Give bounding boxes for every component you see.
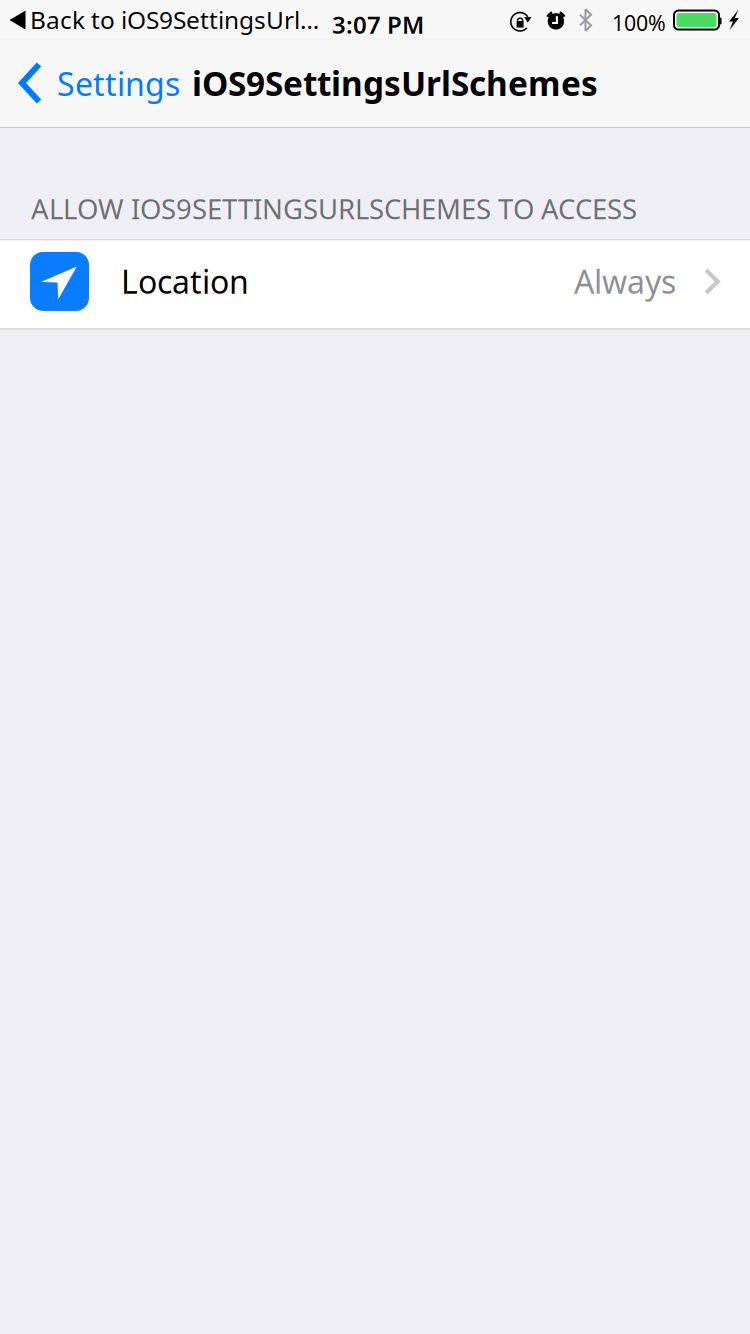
- staticText: 3:07 PM: [332, 9, 424, 40]
- button[interactable]: Location: [0, 240, 750, 328]
- staticText: Settings: [57, 62, 180, 105]
- staticText: Location: [121, 260, 249, 303]
- staticText: iOS9SettingsUrlSchemes: [192, 61, 598, 105]
- staticText: 100%: [612, 9, 666, 37]
- staticText: ALLOW IOS9SETTINGSURLSCHEMES TO ACCESS: [31, 190, 637, 227]
- staticText: Back to iOS9SettingsUrl…: [30, 3, 319, 36]
- button[interactable]: Back to iOS9SettingsUrlSchemes: [0, 0, 319, 40]
- staticText: Always: [574, 260, 676, 303]
- button[interactable]: Settings: [0, 40, 196, 127]
